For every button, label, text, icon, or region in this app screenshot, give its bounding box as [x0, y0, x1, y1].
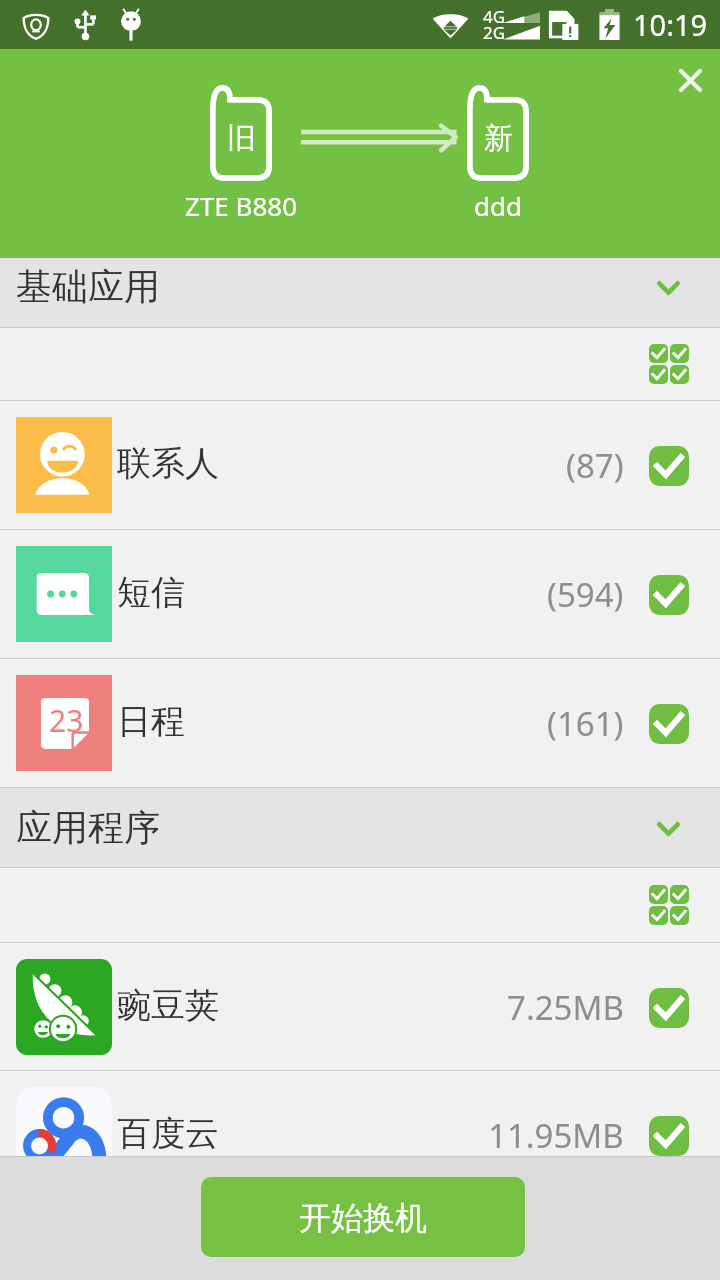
staticText: (161) [547, 701, 624, 746]
staticText: 百度云 [117, 1112, 219, 1155]
button[interactable]: 豌豆荚 [0, 943, 720, 1070]
staticText: 新 [484, 120, 513, 157]
staticText: 10:19 [633, 5, 708, 44]
staticText: ZTE B880 [185, 188, 298, 223]
staticText: 4G [483, 5, 506, 28]
button[interactable]: 短信 [0, 530, 720, 658]
staticText: 开始换机 [299, 1198, 427, 1238]
staticText: 应用程序 [16, 805, 160, 850]
staticText: 基础应用 [16, 264, 160, 309]
button[interactable]: 百度云 [0, 1071, 720, 1156]
staticText: 豌豆荚 [117, 984, 219, 1027]
staticText: 7.25MB [507, 985, 624, 1030]
staticText: 联系人 [117, 442, 219, 485]
button[interactable]: 联系人 [0, 401, 720, 529]
button[interactable]: Close [662, 52, 718, 108]
button[interactable]: Select all [0, 328, 720, 400]
button[interactable]: 23 [0, 659, 720, 787]
button[interactable]: Select all [0, 868, 720, 942]
button[interactable]: 基础应用 [0, 258, 720, 327]
staticText: 2G [483, 21, 506, 44]
staticText: 23 [49, 700, 84, 741]
staticText: (594) [547, 572, 624, 617]
staticText: 短信 [117, 571, 185, 614]
button[interactable]: 应用程序 [0, 788, 720, 867]
staticText: 旧 [227, 120, 256, 157]
button[interactable]: 开始换机 [201, 1177, 525, 1257]
staticText: 11.95MB [488, 1113, 624, 1158]
staticText: (87) [566, 443, 624, 488]
staticText: ddd [474, 188, 522, 223]
staticText: 日程 [117, 700, 185, 743]
